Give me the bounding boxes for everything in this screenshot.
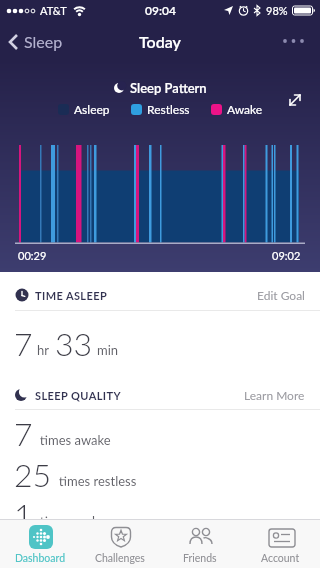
staticText: min xyxy=(97,342,119,358)
staticText: times awake xyxy=(40,432,111,448)
staticText: Friends xyxy=(183,552,217,565)
staticText: TIME ASLEEP xyxy=(35,289,108,302)
staticText: Sleep Pattern xyxy=(130,80,207,96)
button[interactable]: Challenges xyxy=(80,520,160,568)
staticText: Sleep xyxy=(24,32,63,51)
button[interactable]: Learn More xyxy=(244,388,305,402)
button[interactable] xyxy=(282,37,306,45)
staticText: Dashboard xyxy=(15,552,66,565)
button[interactable]: Dashboard xyxy=(0,520,80,568)
button[interactable] xyxy=(286,91,304,109)
staticText: 33 xyxy=(55,324,93,362)
button[interactable]: Sleep xyxy=(0,32,63,51)
staticText: 25 xyxy=(14,455,52,493)
staticText: Today xyxy=(139,32,181,51)
staticText: 7 xyxy=(14,414,33,452)
staticText: AT&T xyxy=(40,4,67,17)
staticText: 7 xyxy=(14,324,33,362)
staticText: time awake xyxy=(40,513,106,529)
staticText: 98% xyxy=(266,4,288,17)
staticText: hr xyxy=(37,342,49,358)
staticText: Restless xyxy=(147,102,190,116)
staticText: 00:29 xyxy=(18,249,47,262)
staticText: Challenges xyxy=(95,552,145,565)
staticText: 09:02 xyxy=(272,249,301,262)
button[interactable]: Account xyxy=(240,520,320,568)
staticText: times restless xyxy=(59,473,137,489)
staticText: 09:04 xyxy=(145,3,176,17)
button[interactable]: Friends xyxy=(160,520,240,568)
staticText: Account xyxy=(261,552,300,565)
staticText: Asleep xyxy=(74,102,110,116)
staticText: SLEEP QUALITY xyxy=(35,389,121,402)
staticText: 1 xyxy=(14,495,33,533)
staticText: Awake xyxy=(227,102,263,116)
button[interactable]: Edit Goal xyxy=(257,288,305,302)
